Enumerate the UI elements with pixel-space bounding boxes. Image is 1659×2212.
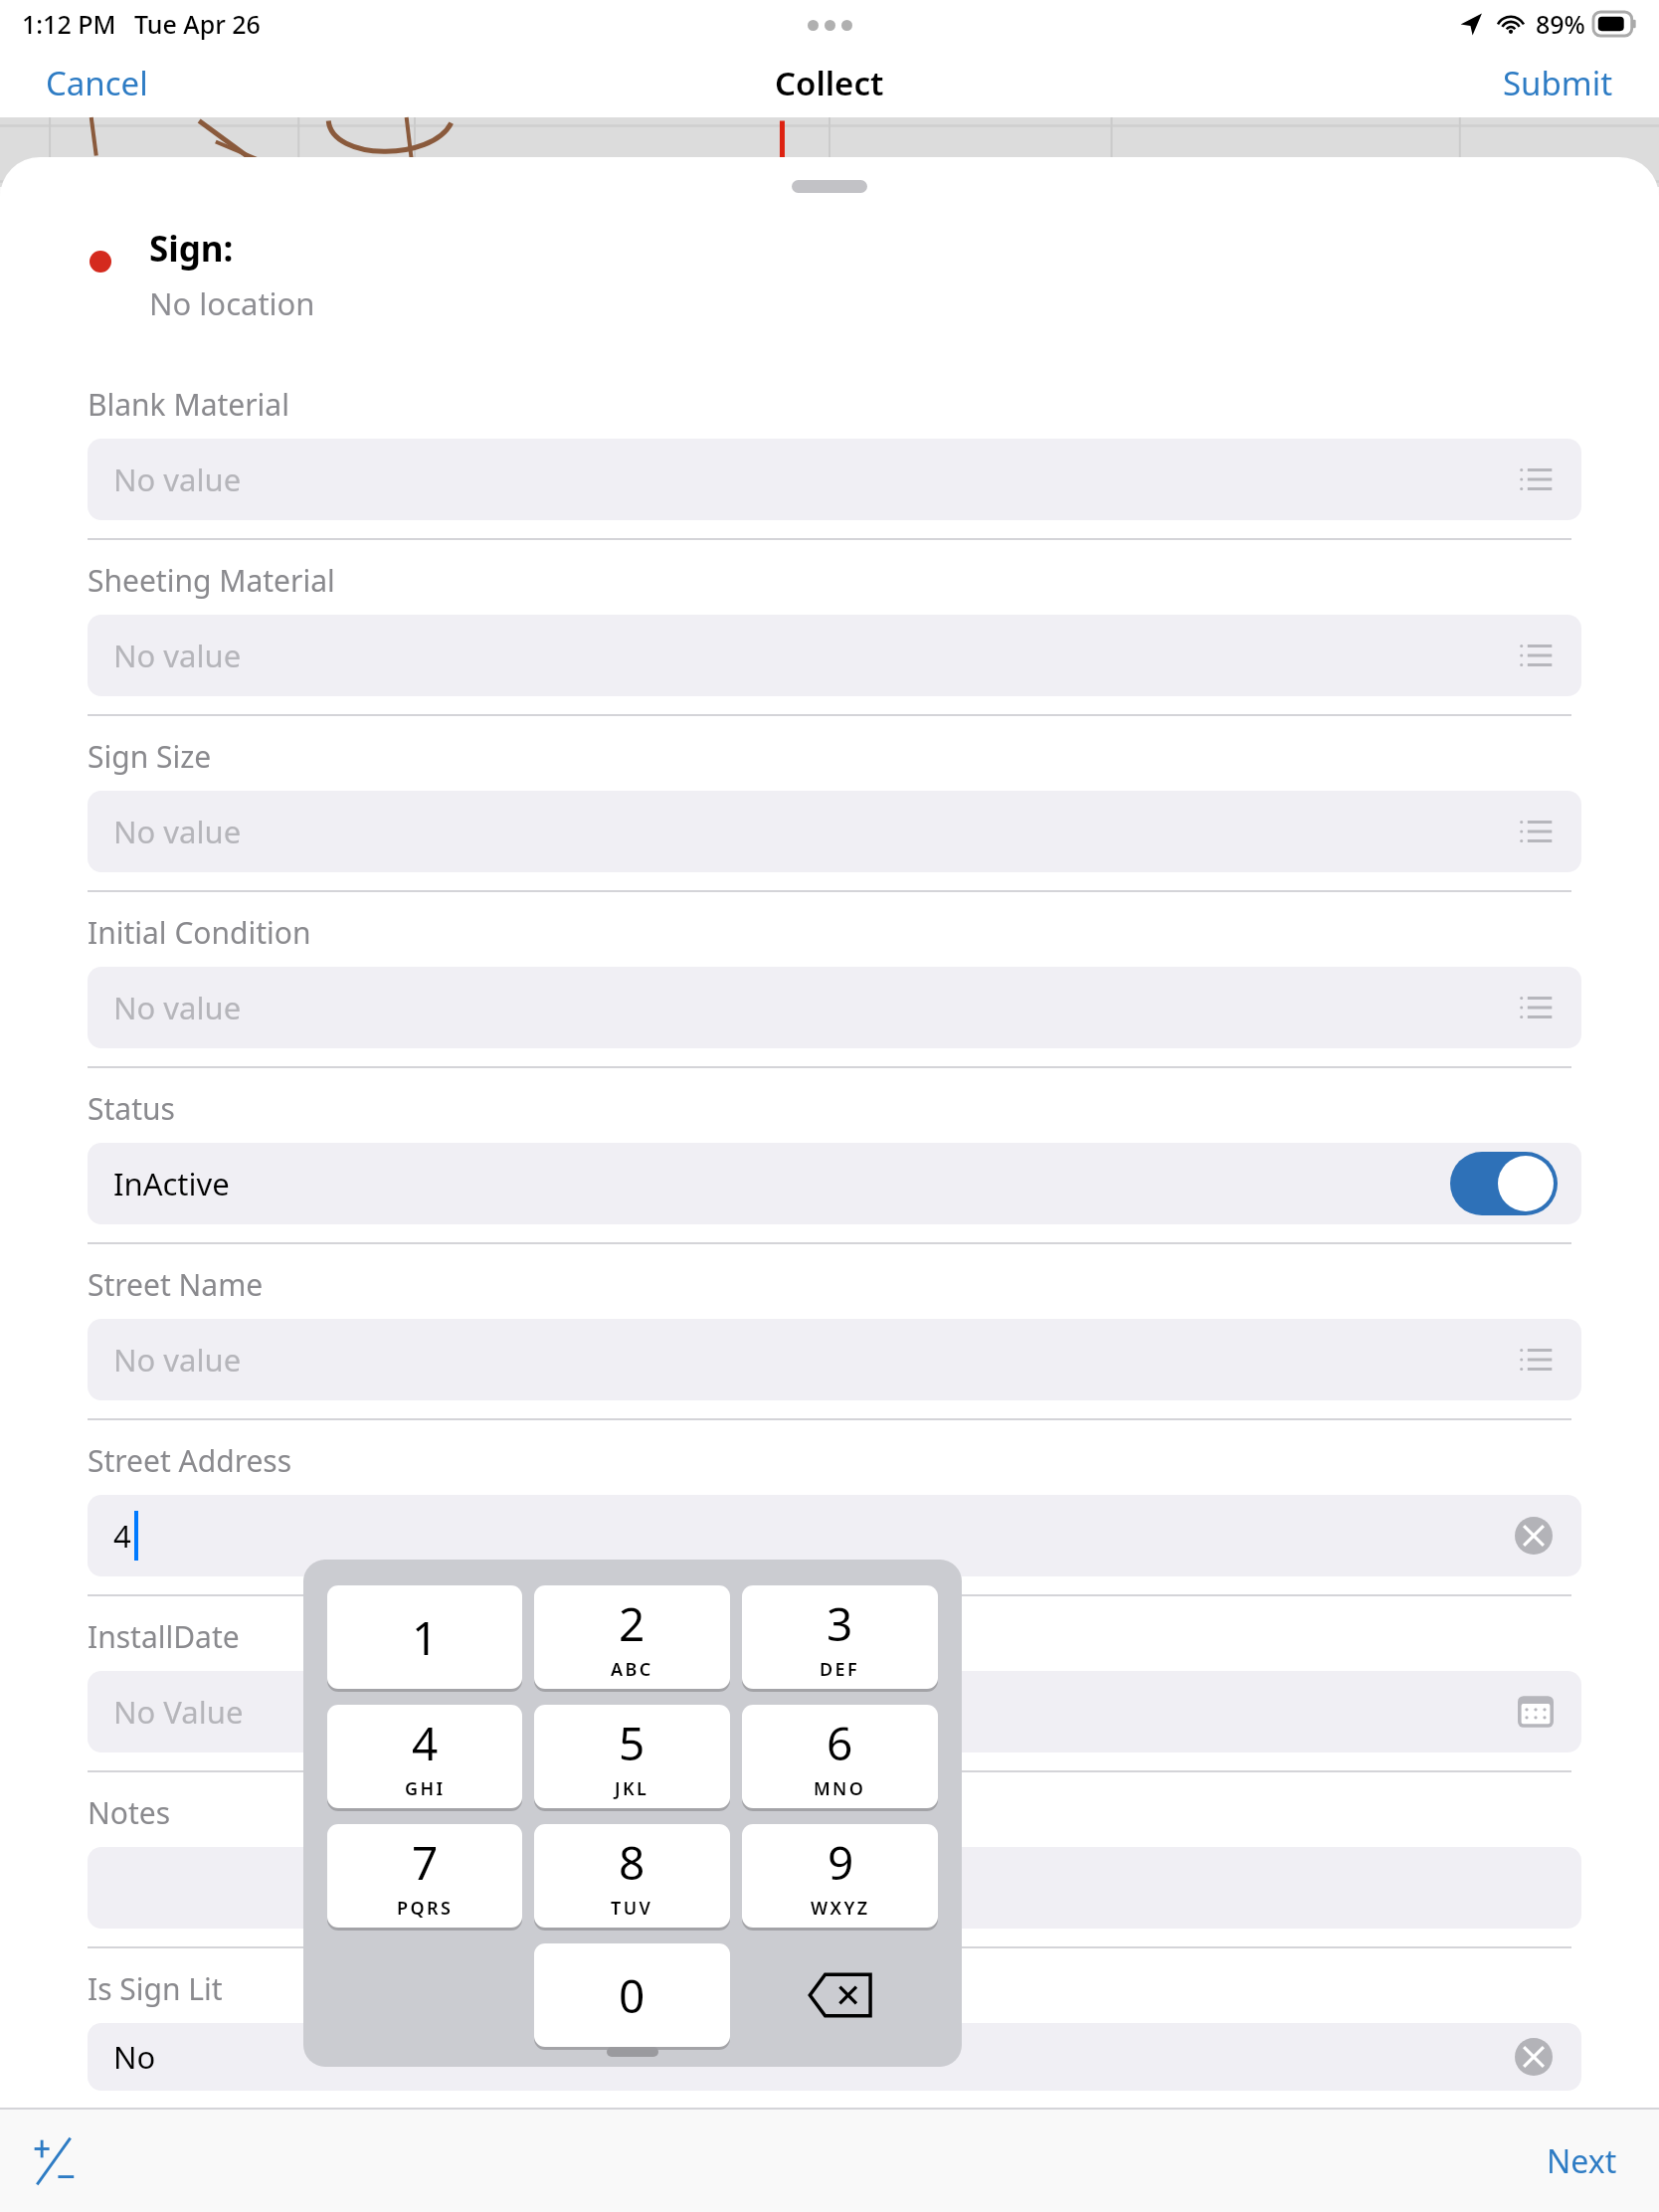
button[interactable]: Sign Size (0, 716, 1659, 890)
staticText: WXYZ (811, 1896, 870, 1921)
staticText: No Value (113, 1691, 244, 1733)
button[interactable]: 2 (534, 1585, 730, 1689)
button[interactable]: 3 (742, 1585, 938, 1689)
staticText: InActive (113, 1163, 230, 1204)
button[interactable]: Plus minus (18, 2125, 90, 2197)
staticText: Sheeting Material (88, 560, 335, 601)
button[interactable]: 8 (534, 1824, 730, 1928)
staticText: Blank Material (88, 384, 289, 425)
button[interactable]: Pick a date (1514, 1690, 1558, 1734)
staticText: Tue Apr 26 (134, 7, 261, 41)
button[interactable]: 4 (327, 1705, 522, 1808)
button[interactable]: Choose from list (1514, 1338, 1558, 1382)
staticText: 9 (828, 1831, 854, 1894)
button[interactable]: 7 (327, 1824, 522, 1928)
button[interactable]: Status toggle (1450, 1152, 1558, 1215)
staticText: Sign Size (88, 736, 212, 777)
staticText: 1:12 PM (22, 7, 116, 41)
button[interactable]: Notes (0, 1772, 1659, 1946)
staticText: Street Address (88, 1440, 292, 1481)
staticText: TUV (611, 1896, 653, 1921)
staticText: Next (1547, 2139, 1617, 2183)
staticText: No value (113, 459, 242, 500)
staticText: InstallDate (88, 1616, 240, 1657)
button[interactable]: Street Name (0, 1244, 1659, 1418)
staticText: Initial Condition (88, 912, 311, 953)
button[interactable]: 6 (742, 1705, 938, 1808)
staticText: No value (113, 811, 242, 852)
staticText: No location (149, 282, 315, 324)
staticText: GHI (405, 1776, 446, 1801)
button[interactable]: 0 (534, 1943, 730, 2047)
staticText: No value (113, 987, 242, 1028)
button[interactable]: Cancel (20, 51, 174, 115)
button[interactable]: 5 (534, 1705, 730, 1808)
button[interactable]: Submit (1477, 51, 1639, 115)
staticText: No value (113, 1339, 242, 1381)
button[interactable]: Street Address (0, 1420, 1659, 1594)
staticText: 0 (619, 1964, 645, 2027)
button[interactable]: InstallDate (0, 1596, 1659, 1770)
button[interactable]: Status (0, 1068, 1659, 1242)
staticText: 1 (412, 1606, 439, 1669)
staticText: DEF (820, 1657, 860, 1682)
staticText: 89% (1536, 7, 1585, 41)
staticText: ABC (611, 1657, 653, 1682)
button[interactable]: Choose from list (1514, 634, 1558, 677)
button[interactable]: Next (1533, 2129, 1631, 2193)
staticText: JKL (615, 1776, 649, 1801)
button[interactable]: Choose from list (1514, 458, 1558, 501)
button[interactable]: Clear text (1510, 2033, 1558, 2081)
staticText: 7 (412, 1831, 439, 1894)
staticText: No value (113, 635, 242, 676)
staticText: 2 (619, 1592, 645, 1655)
staticText: Submit (1503, 61, 1613, 105)
staticText: 4 (412, 1712, 439, 1774)
button[interactable]: Choose from list (1514, 810, 1558, 853)
staticText: 5 (619, 1712, 645, 1774)
button[interactable]: Sheeting Material (0, 540, 1659, 714)
staticText: 4 (113, 1515, 131, 1557)
button[interactable]: Blank Material (0, 364, 1659, 538)
button[interactable]: Is Sign Lit (0, 1948, 1659, 2109)
staticText: MNO (814, 1776, 866, 1801)
staticText: Notes (88, 1792, 171, 1833)
button[interactable]: Initial Condition (0, 892, 1659, 1066)
staticText: Sign: (149, 225, 234, 273)
button[interactable]: Choose from list (1514, 986, 1558, 1029)
button[interactable]: Backspace (742, 1943, 938, 2047)
staticText: PQRS (397, 1896, 454, 1921)
button[interactable]: 9 (742, 1824, 938, 1928)
button[interactable]: Clear text (1510, 1512, 1558, 1560)
staticText: No (113, 2036, 156, 2078)
staticText: Collect (775, 61, 884, 105)
staticText: 3 (827, 1592, 853, 1655)
staticText: 8 (619, 1831, 645, 1894)
staticText: Cancel (46, 61, 148, 105)
staticText: Is Sign Lit (88, 1968, 223, 2009)
staticText: Status (88, 1088, 175, 1129)
staticText: 6 (827, 1712, 853, 1774)
staticText: Street Name (88, 1264, 264, 1305)
button[interactable]: 1 (327, 1585, 522, 1689)
